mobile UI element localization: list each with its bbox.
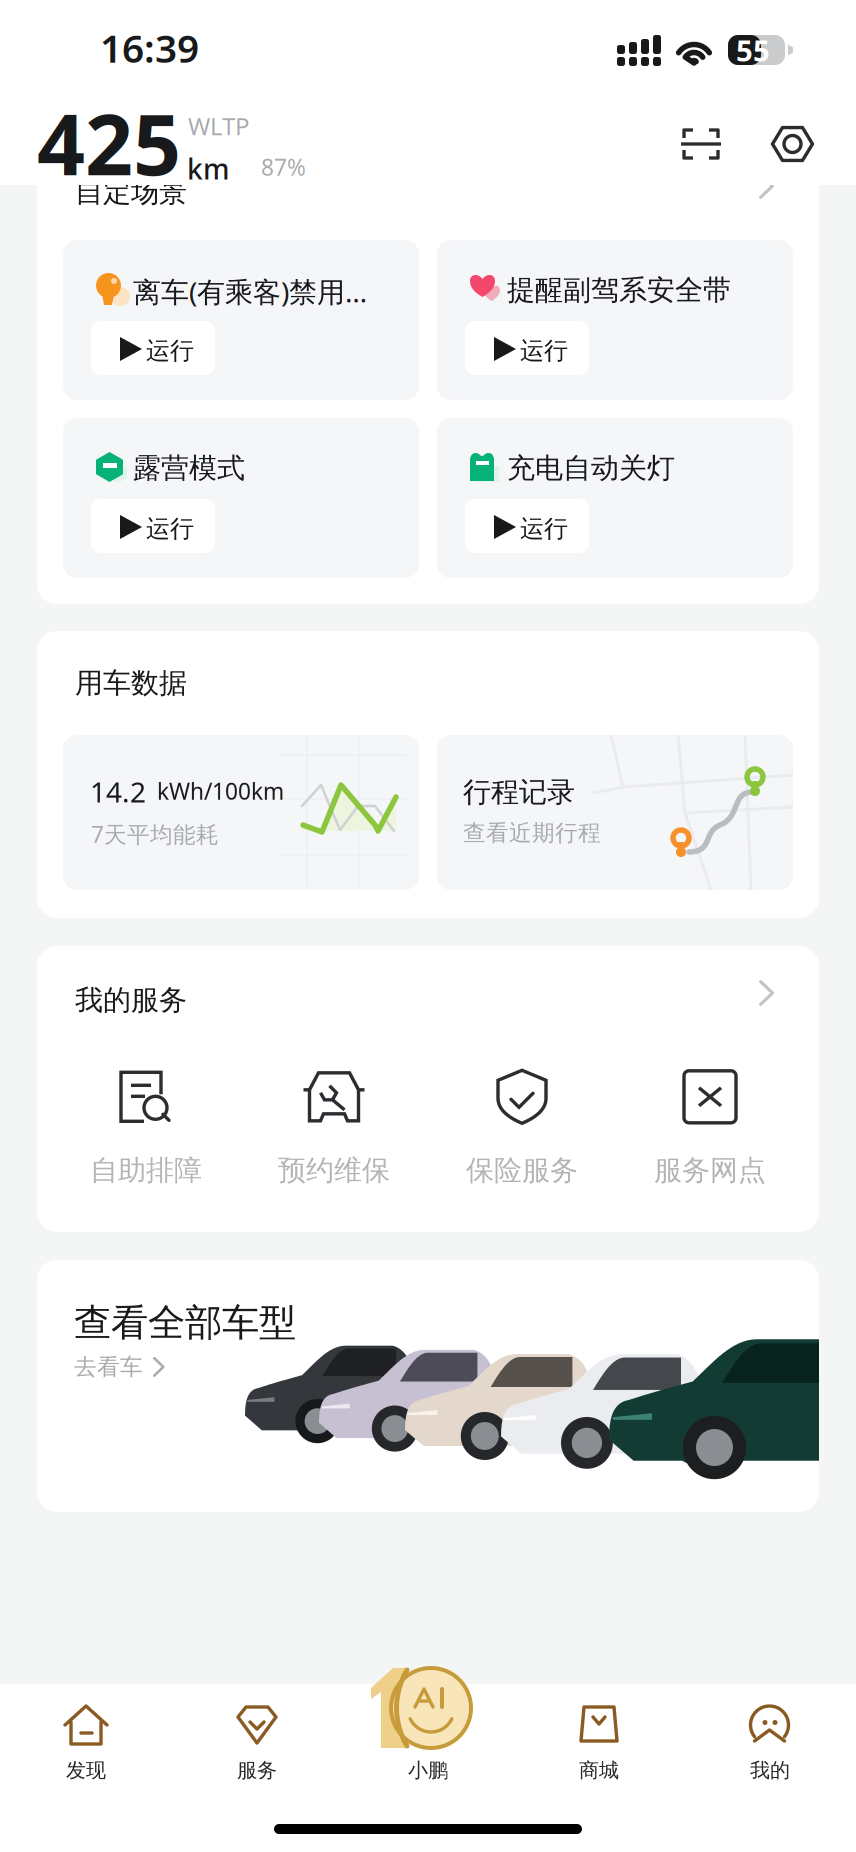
button[interactable]: 运行 — [465, 499, 589, 553]
staticText: 运行 — [520, 514, 568, 543]
button[interactable]: 运行 — [91, 321, 215, 375]
button[interactable]: 露营模式 — [63, 418, 419, 578]
staticText: 离车(有乘客)禁用… — [133, 273, 367, 310]
staticText: 查看全部车型 — [74, 1300, 296, 1346]
button[interactable]: 小鹏 AI — [365, 1668, 473, 1748]
staticText: 16:39 — [100, 22, 199, 73]
button[interactable]: Scan — [681, 125, 721, 163]
button[interactable]: 我的服务 — [37, 974, 819, 1018]
staticText: 预约维保 — [278, 1153, 390, 1188]
staticText: 查看近期行程 — [463, 819, 601, 847]
button[interactable]: 服务 — [171, 1696, 342, 1816]
staticText: 用车数据 — [75, 666, 187, 700]
button[interactable]: 查看全部车型 — [37, 1260, 819, 1512]
button[interactable]: 提醒副驾系安全带 — [437, 240, 793, 400]
staticText: 提醒副驾系安全带 — [507, 273, 731, 307]
button[interactable]: 服务网点 — [616, 1068, 804, 1188]
staticText: 露营模式 — [133, 451, 245, 485]
staticText: 充电自动关灯 — [507, 451, 675, 485]
staticText: 87% — [261, 152, 306, 182]
staticText: 运行 — [520, 336, 568, 365]
staticText: 行程记录 — [463, 775, 575, 809]
button[interactable]: 充电自动关灯 — [437, 418, 793, 578]
button[interactable]: 商城 — [513, 1696, 684, 1816]
staticText: 商城 — [579, 1758, 619, 1783]
button[interactable]: 离车(有乘客)禁用… — [63, 240, 419, 400]
staticText: km — [187, 150, 230, 187]
button[interactable]: 行程记录 — [437, 735, 793, 890]
staticText: 发现 — [66, 1758, 106, 1783]
staticText: 我的服务 — [75, 983, 187, 1017]
staticText: WLTP — [188, 110, 250, 142]
button[interactable]: 14.2 — [63, 735, 419, 890]
button[interactable]: 保险服务 — [428, 1068, 616, 1188]
staticText: kWh/100km — [157, 776, 284, 806]
staticText: 服务网点 — [654, 1153, 766, 1188]
staticText: 服务 — [237, 1758, 277, 1783]
button[interactable]: 预约维保 — [240, 1068, 428, 1188]
staticText: 自定场景 — [75, 175, 187, 209]
staticText: 去看车 — [74, 1353, 143, 1381]
button[interactable]: 我的 — [684, 1696, 855, 1816]
staticText: 保险服务 — [466, 1153, 578, 1188]
staticText: 自助排障 — [90, 1153, 202, 1188]
staticText: 55 — [736, 30, 770, 69]
button[interactable]: 运行 — [465, 321, 589, 375]
staticText: 小鹏 — [408, 1758, 448, 1783]
button[interactable]: 自定场景 — [37, 170, 819, 214]
button[interactable]: 发现 — [0, 1696, 171, 1816]
button[interactable]: Vehicle controls — [771, 124, 814, 164]
button[interactable]: 小鹏 — [342, 1696, 513, 1816]
button[interactable]: 自助排障 — [52, 1068, 240, 1188]
staticText: 我的 — [750, 1758, 790, 1783]
staticText: 425 — [37, 87, 181, 198]
staticText: 运行 — [146, 336, 194, 365]
staticText: 运行 — [146, 514, 194, 543]
staticText: 14.2 — [90, 773, 146, 810]
staticText: 7天平均能耗 — [91, 819, 219, 849]
button[interactable]: 运行 — [91, 499, 215, 553]
